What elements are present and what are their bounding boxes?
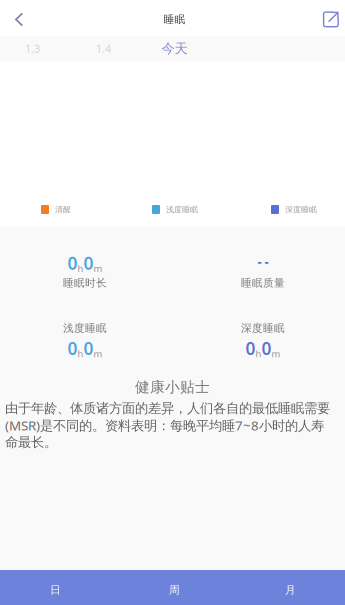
staticText: 0 (67, 337, 77, 360)
staticText: h (77, 262, 83, 274)
staticText: 0 (83, 251, 93, 274)
staticText: 1.3 (25, 41, 40, 56)
staticText: 深度睡眠 (285, 205, 317, 214)
staticText: 睡眠质量 (241, 276, 285, 290)
button[interactable]: 周 (115, 570, 230, 605)
button[interactable]: 1.4 (68, 36, 139, 60)
staticText: 睡眠时长 (63, 276, 107, 290)
staticText: 清醒 (55, 205, 71, 214)
staticText: 月 (285, 583, 296, 596)
staticText: h (77, 347, 83, 360)
button[interactable]: 月 (230, 570, 345, 605)
staticText: 今天 (161, 40, 187, 57)
staticText: 由于年龄、体质诸方面的差异，人们各自的最低睡眠需要(MSR)是不同的。资料表明：… (5, 400, 330, 450)
button[interactable]: 1.3 (0, 36, 68, 60)
staticText: 浅度睡眠 (166, 205, 198, 214)
staticText: 1.4 (96, 41, 111, 56)
staticText: 周 (169, 583, 180, 596)
staticText: 浅度睡眠 (63, 322, 107, 335)
staticText: m (93, 347, 102, 360)
button[interactable]: 分享 (317, 0, 345, 36)
staticText: 健康小贴士 (135, 378, 210, 396)
button[interactable]: 日 (0, 570, 115, 605)
staticText: - - (257, 253, 268, 270)
staticText: 日 (50, 583, 61, 596)
staticText: 0 (83, 337, 93, 360)
button[interactable]: 返回 (0, 0, 38, 36)
staticText: 深度睡眠 (241, 322, 285, 335)
staticText: 0 (245, 337, 255, 360)
staticText: 0 (67, 251, 77, 274)
staticText: m (93, 262, 102, 274)
staticText: 睡眠 (163, 13, 185, 26)
staticText: h (255, 347, 261, 360)
button[interactable]: 今天 (139, 36, 210, 60)
staticText: 0 (261, 337, 271, 360)
staticText: m (271, 347, 280, 360)
